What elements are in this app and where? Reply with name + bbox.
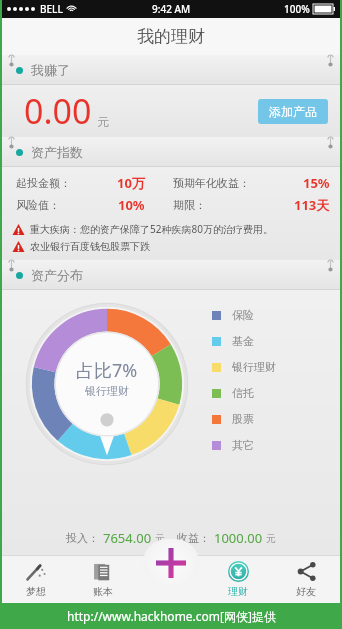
staticText: 风险值： xyxy=(16,198,60,212)
staticText: 资产分布 xyxy=(31,267,83,283)
staticText: 113天 xyxy=(294,196,330,214)
staticText: 15% xyxy=(303,174,330,192)
button[interactable]: Add xyxy=(143,539,199,587)
button[interactable]: 添加产品 xyxy=(258,99,328,124)
staticText: 100% xyxy=(284,2,310,16)
staticText: 我赚了 xyxy=(31,62,70,78)
staticText: 银行理财 xyxy=(232,360,276,374)
staticText: 理财 xyxy=(228,585,248,598)
staticText: 银行理财 xyxy=(85,384,129,398)
staticText: 7654.00 xyxy=(103,529,152,547)
staticText: 起投金额： xyxy=(16,176,71,190)
staticText: 基金 xyxy=(232,334,254,348)
staticText: 预期年化收益： xyxy=(173,176,250,190)
staticText: 梦想 xyxy=(26,585,46,598)
staticText: 0.00 xyxy=(24,88,92,134)
staticText: 投入： xyxy=(66,531,99,545)
staticText: 元 xyxy=(266,532,276,545)
staticText: 好友 xyxy=(296,585,316,598)
staticText: 10万 xyxy=(117,174,145,192)
button[interactable]: 理财 xyxy=(204,555,272,603)
staticText: 元 xyxy=(155,532,165,545)
staticText: 元 xyxy=(97,114,109,129)
staticText: 收益： xyxy=(177,531,210,545)
button[interactable]: 好友 xyxy=(272,555,340,603)
staticText: 10% xyxy=(118,196,145,214)
staticText: BELL xyxy=(40,2,63,16)
staticText: 重大疾病：您的资产保障了52种疾病80万的治疗费用。 xyxy=(30,222,273,236)
staticText: 信托 xyxy=(232,386,254,400)
staticText: 添加产品 xyxy=(269,104,317,119)
staticText: 账本 xyxy=(93,585,113,598)
staticText: 1000.00 xyxy=(214,529,263,547)
staticText: 占比7% xyxy=(76,358,138,383)
staticText: 其它 xyxy=(232,438,254,452)
staticText: 股票 xyxy=(232,412,254,426)
staticText: 我的理财 xyxy=(137,26,205,47)
staticText: http://www.hackhome.com[网侠]提供 xyxy=(67,608,276,624)
staticText: 保险 xyxy=(232,308,254,322)
staticText: 资产指数 xyxy=(31,144,83,160)
button[interactable]: 梦想 xyxy=(2,555,69,603)
staticText: 9:42 AM xyxy=(152,2,191,16)
staticText: 农业银行百度钱包股票下跌 xyxy=(30,240,150,253)
staticText: 期限： xyxy=(173,198,206,212)
button[interactable]: 账本 xyxy=(69,555,136,603)
